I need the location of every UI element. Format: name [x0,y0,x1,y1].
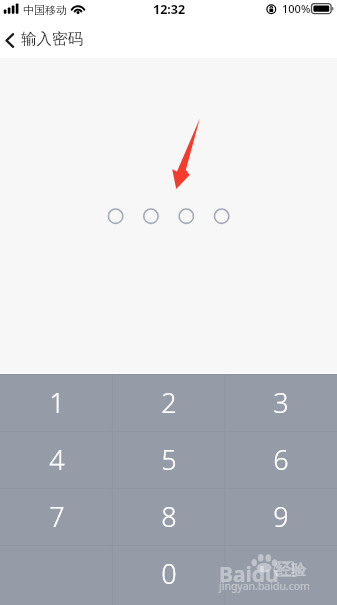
staticText: 1 [49,384,65,421]
staticText: 3 [273,384,289,421]
staticText: 2 [161,384,177,421]
staticText: 5 [161,441,177,478]
staticText: 6 [273,441,289,478]
button[interactable]: 8 [113,488,225,545]
staticText: 7 [49,498,65,535]
button[interactable]: 5 [113,431,225,488]
button[interactable]: 4 [0,431,113,488]
button[interactable]: 6 [225,431,337,488]
other: Back [5,33,15,48]
staticText: 经验 [276,561,306,580]
staticText: 输入密码 [21,29,83,49]
staticText: 0 [161,555,177,592]
staticText: 12:32 [153,1,186,18]
button[interactable]: 3 [225,374,337,431]
button[interactable]: 7 [0,488,113,545]
staticText: 9 [273,498,289,535]
button[interactable]: 9 [225,488,337,545]
staticText: 100% [282,1,311,16]
button[interactable]: Back [0,29,93,53]
staticText: 中国移动 [23,3,67,17]
staticText: Baidu [219,560,279,589]
staticText: 8 [161,498,177,535]
staticText: jingyan.baidu.com [219,579,310,593]
button[interactable]: 0 [113,545,225,602]
button[interactable]: 2 [113,374,225,431]
staticText: 4 [49,441,65,478]
button[interactable]: 1 [0,374,113,431]
